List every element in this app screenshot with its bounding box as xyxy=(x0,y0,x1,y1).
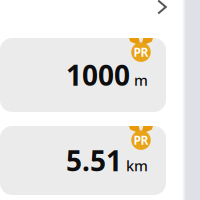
button[interactable]: 1000 xyxy=(0,38,166,112)
button[interactable]: 5.51 xyxy=(0,126,166,195)
staticText: PR xyxy=(133,132,148,148)
staticText: 5.51 xyxy=(66,142,122,179)
staticText: PR xyxy=(133,44,148,60)
staticText: 1000 xyxy=(66,56,130,94)
staticText: m xyxy=(134,70,148,90)
button[interactable]: Show more xyxy=(157,0,167,15)
staticText: km xyxy=(126,156,148,175)
